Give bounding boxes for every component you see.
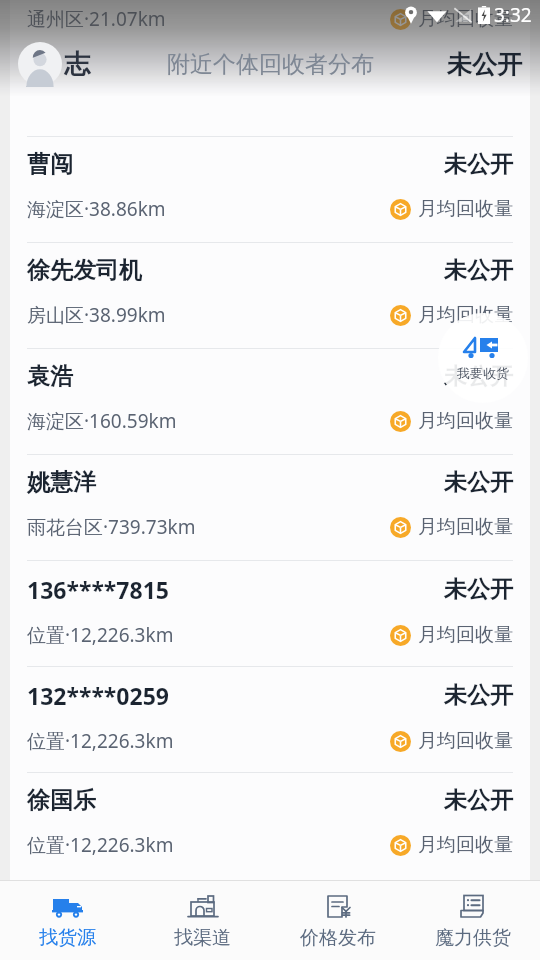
staticText: 附近个体回收者分布 [167,50,374,79]
staticText: 找渠道 [174,926,231,950]
staticText: 价格发布 [300,926,376,950]
staticText: 未公开 [444,150,513,179]
staticText: 132****0259 [27,680,169,711]
staticText: 未公开 [444,575,513,604]
button[interactable]: 志 [18,42,90,86]
staticText: 海淀区·160.59km [27,408,177,434]
button[interactable]: 132****0259 [10,667,530,772]
staticText: 找货源 [39,926,96,950]
staticText: 海淀区·38.86km [27,196,166,222]
staticText: 房山区·38.99km [27,302,166,328]
staticText: 未公开 [444,468,513,497]
staticText: 月均回收量 [418,409,513,433]
staticText: 未公开 [444,786,513,815]
button[interactable]: 找货源 [0,881,135,960]
button[interactable]: 我要收货 [438,313,528,403]
staticText: 位置·12,226.3km [27,622,174,648]
staticText: 136****7815 [27,574,169,605]
staticText: 曹闯 [27,150,73,179]
button[interactable]: 徐先发司机 [10,243,530,348]
button[interactable]: 136****7815 [10,561,530,666]
staticText: 位置·12,226.3km [27,832,174,858]
staticText: 志 [64,48,90,81]
staticText: 位置·12,226.3km [27,728,174,754]
staticText: 3:32 [494,2,532,28]
staticText: 我要收货 [457,365,509,381]
staticText: 徐先发司机 [27,256,142,285]
staticText: 月均回收量 [418,729,513,753]
staticText: 未公开 [444,362,513,391]
staticText: 通州区·21.07km [27,6,166,32]
staticText: 徐国乐 [27,786,96,815]
staticText: 魔力供货 [435,926,511,950]
button[interactable]: 王志 [10,0,530,136]
staticText: 月均回收量 [418,303,513,327]
staticText: 月均回收量 [418,197,513,221]
button[interactable]: 魔力供货 [405,881,540,960]
staticText: 月均回收量 [418,623,513,647]
staticText: 月均回收量 [418,833,513,857]
button[interactable]: 曹闯 [10,137,530,242]
button[interactable]: 袁浩 [10,349,530,454]
staticText: 月均回收量 [418,7,513,31]
staticText: 月均回收量 [418,515,513,539]
staticText: 未公开 [447,49,522,80]
staticText: 袁浩 [27,362,73,391]
staticText: 未公开 [444,256,513,285]
button[interactable]: 徐国乐 [10,773,530,878]
button[interactable]: 找渠道 [135,881,270,960]
staticText: 姚慧洋 [27,468,96,497]
button[interactable]: 价格发布 [270,881,405,960]
button[interactable]: 姚慧洋 [10,455,530,560]
staticText: 未公开 [444,681,513,710]
staticText: 雨花台区·739.73km [27,514,196,540]
